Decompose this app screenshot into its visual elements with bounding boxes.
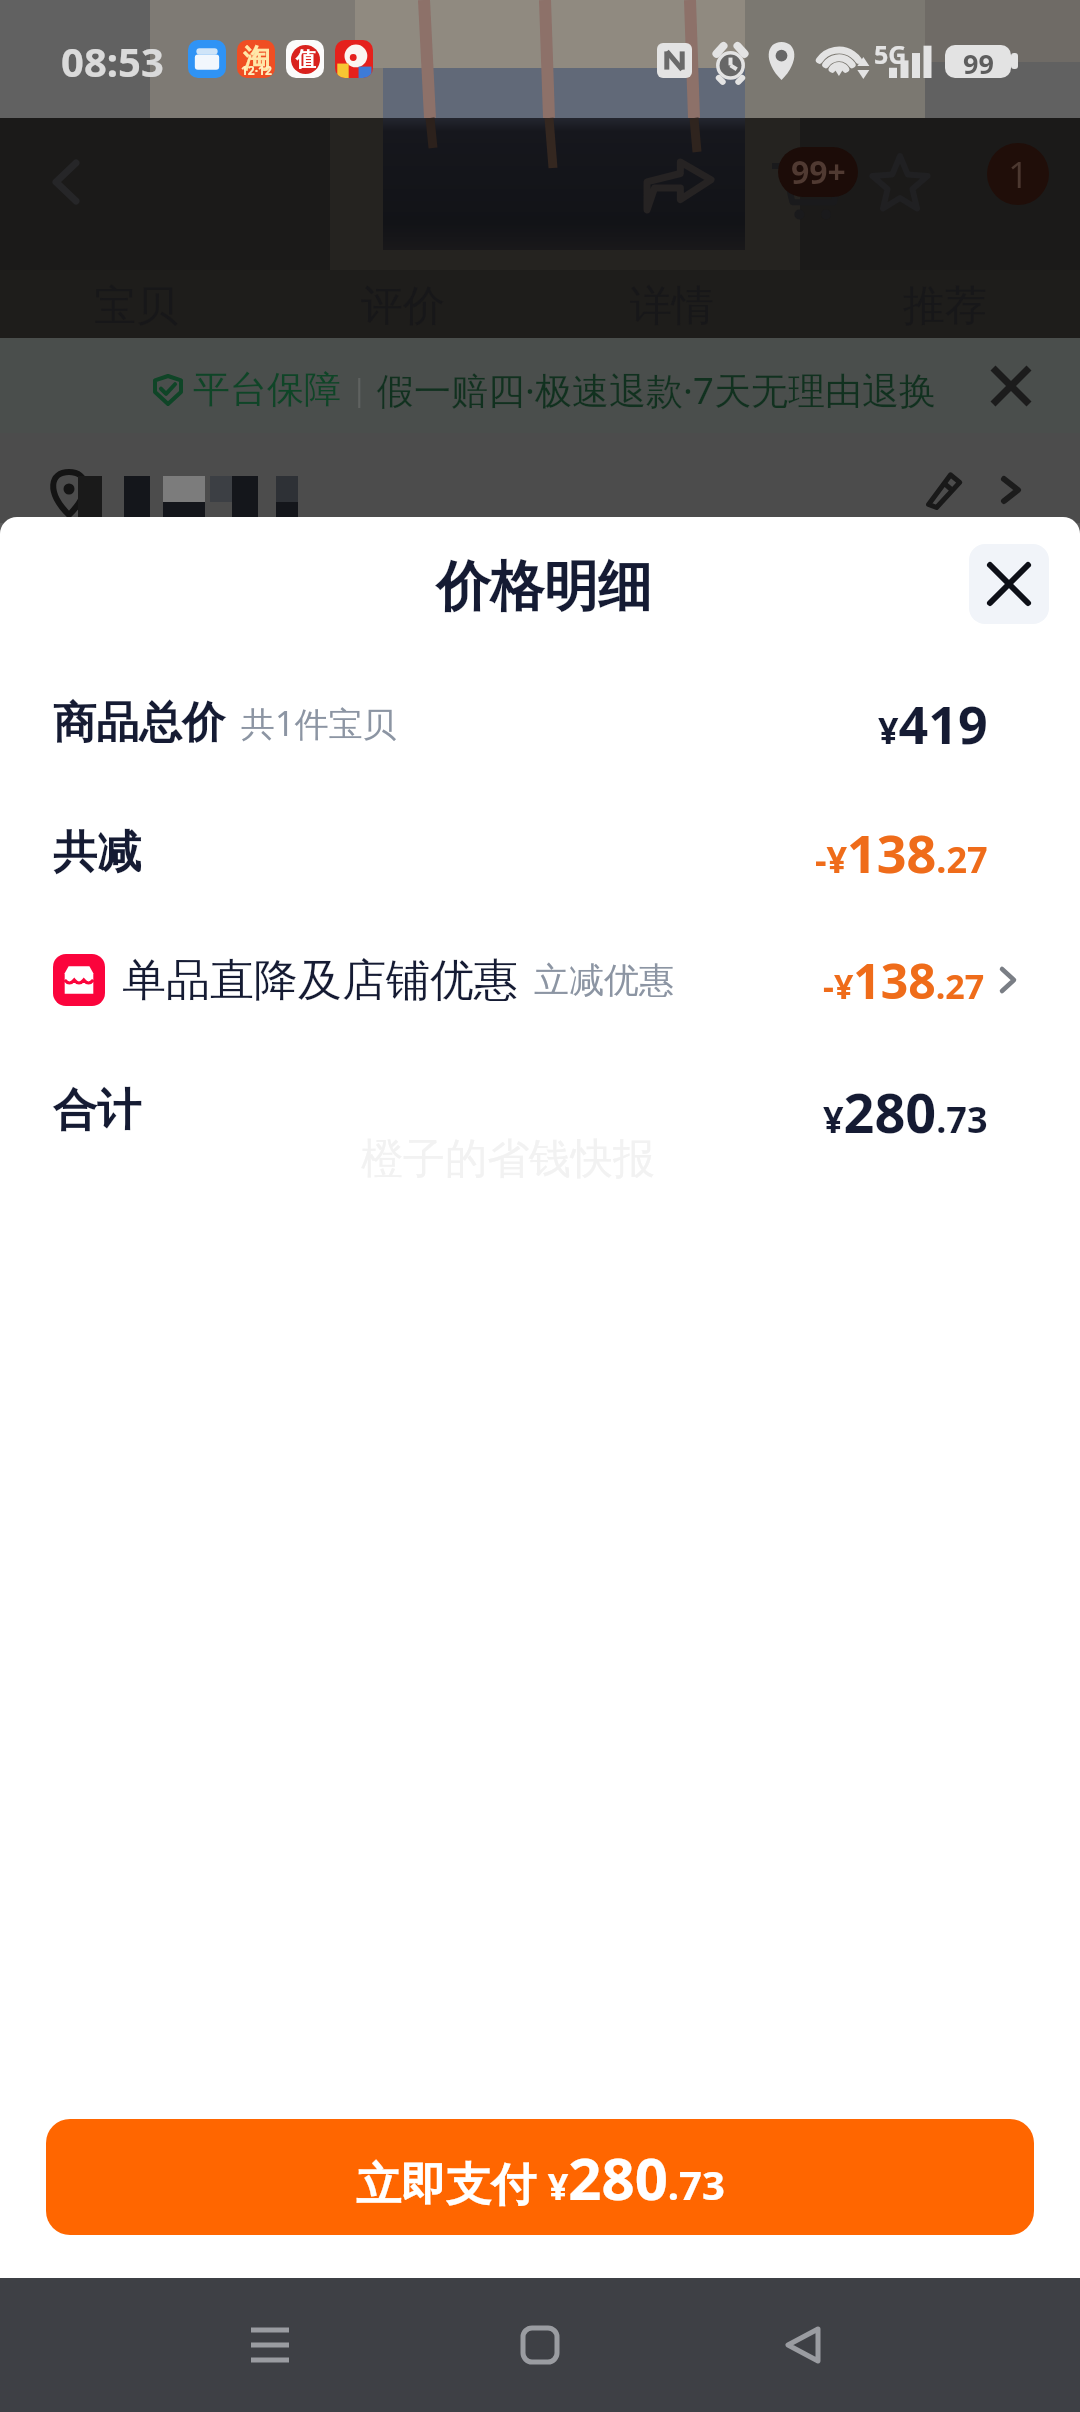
button[interactable]: 返回 — [24, 138, 112, 226]
staticText: | — [351, 369, 368, 410]
button[interactable]: 关闭提示 — [967, 342, 1055, 430]
staticText: 1 — [1008, 150, 1029, 199]
staticText: 平台保障 — [193, 366, 341, 413]
staticText: 99+ — [791, 150, 846, 194]
button[interactable]: 主页 — [490, 2295, 590, 2395]
staticText: 商品总价 — [53, 696, 225, 750]
staticText: 共1件宝贝 — [241, 700, 397, 746]
staticText: 立减优惠 — [534, 958, 674, 1002]
staticText: 立即支付 ¥280.73 — [356, 2138, 725, 2217]
staticText: 合计 — [53, 1083, 141, 1138]
staticText: 假一赔四·极速退款·7天无理由退换 — [377, 364, 936, 415]
button[interactable]: 最近任务 — [220, 2295, 320, 2395]
staticText: 单品直降及店铺优惠 — [122, 953, 518, 1008]
button[interactable]: 立即支付 ¥280.73 — [46, 2119, 1034, 2235]
staticText: -¥138.27 — [823, 948, 985, 1013]
button[interactable]: 收藏 — [857, 140, 943, 226]
staticText: 值 — [296, 47, 316, 72]
staticText: 价格明细 — [436, 553, 652, 621]
staticText: 橙子的省钱快报 — [361, 1133, 655, 1186]
button[interactable]: 查看更多 — [976, 460, 1046, 520]
button[interactable]: 编辑 — [906, 460, 980, 520]
staticText: 5G — [874, 37, 907, 71]
staticText: 99 — [963, 45, 994, 78]
staticText: 08:53 — [61, 34, 164, 88]
button[interactable]: 单品直降及店铺优惠 — [53, 945, 1016, 1015]
button[interactable]: 关闭 — [969, 544, 1049, 624]
staticText: ¥280.73 — [823, 1075, 988, 1145]
staticText: 共减 — [53, 825, 141, 880]
staticText: -¥138.27 — [815, 817, 988, 887]
button[interactable]: 返回 — [753, 2295, 853, 2395]
staticText: ¥419 — [878, 688, 988, 758]
staticText: 淘 — [243, 42, 270, 76]
button[interactable]: 购物车 — [987, 143, 1049, 205]
staticText: 12·12 — [241, 62, 272, 78]
button[interactable]: 分享 — [633, 144, 725, 228]
